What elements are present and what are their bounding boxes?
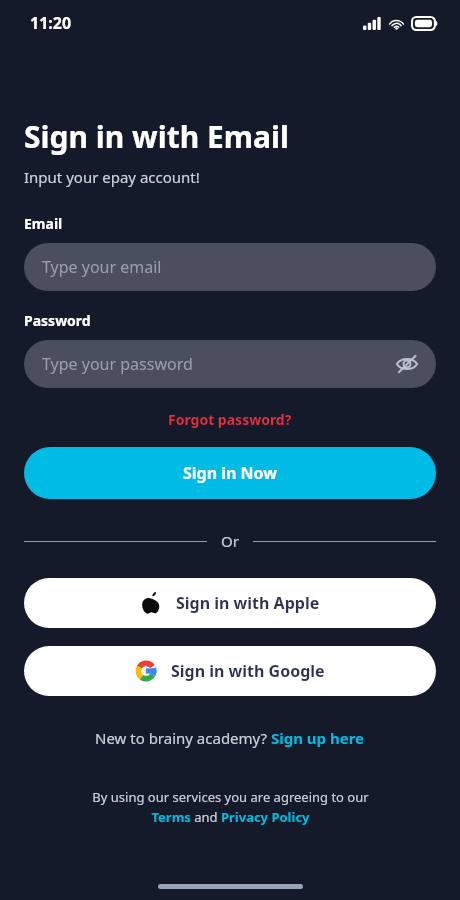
button[interactable]: Sign in with Google bbox=[24, 646, 436, 696]
staticText: Sign in Now bbox=[183, 462, 278, 484]
button[interactable]: New to brainy academy? Sign up here bbox=[89, 724, 371, 752]
staticText: Type your email bbox=[42, 256, 162, 278]
staticText: Email bbox=[24, 214, 63, 233]
staticText: Sign in with Apple bbox=[176, 592, 320, 614]
button[interactable]: Forgot password? bbox=[160, 406, 300, 433]
staticText: Input your epay account! bbox=[24, 167, 200, 187]
button[interactable]: Sign in Now bbox=[24, 447, 436, 499]
staticText: Password bbox=[24, 311, 91, 330]
staticText: Type your password bbox=[42, 353, 193, 375]
staticText: New to brainy academy? Sign up here bbox=[95, 728, 365, 748]
button[interactable]: Type your email bbox=[24, 243, 436, 291]
staticText: 11:20 bbox=[30, 12, 72, 34]
staticText: Or bbox=[221, 531, 239, 551]
staticText: Sign in with Email bbox=[24, 116, 289, 157]
button[interactable]: Show password bbox=[390, 347, 424, 381]
button[interactable]: Type your password bbox=[24, 340, 436, 388]
staticText: Sign in with Google bbox=[171, 660, 325, 682]
staticText: Forgot password? bbox=[168, 410, 292, 429]
button[interactable]: Sign in with Apple bbox=[24, 578, 436, 628]
staticText: By using our services you are agreeing t… bbox=[92, 788, 369, 826]
